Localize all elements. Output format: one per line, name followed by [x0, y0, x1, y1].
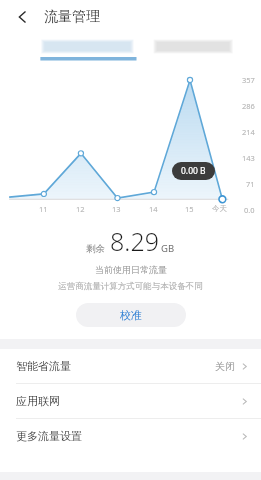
button[interactable]: 更多流量设置 — [0, 419, 261, 453]
button[interactable]: 校准 — [76, 303, 186, 327]
staticText: 关闭 — [215, 360, 235, 373]
staticText: 12 — [76, 204, 261, 214]
staticText: 今天 — [212, 204, 261, 213]
staticText: 14 — [149, 204, 261, 214]
staticText: 143 — [242, 153, 255, 163]
staticText: 应用联网 — [16, 394, 60, 408]
staticText: 15 — [185, 204, 261, 214]
staticText: 0.0 — [244, 205, 255, 215]
staticText: 剩余 — [86, 243, 105, 255]
button[interactable]: 应用联网 — [0, 384, 261, 418]
staticText: 11 — [39, 204, 261, 214]
staticText: 0.00 B — [181, 165, 206, 177]
staticText: 运营商流量计算方式可能与本设备不同 — [58, 281, 203, 292]
staticText: 流量管理 — [44, 8, 100, 26]
staticText: 357 — [242, 75, 255, 85]
staticText: 智能省流量 — [16, 359, 71, 373]
button[interactable]: 智能省流量 — [0, 349, 261, 383]
staticText: 8.29 — [110, 224, 159, 258]
staticText: 71 — [246, 179, 255, 189]
staticText: 214 — [242, 127, 255, 137]
button[interactable]: Back — [10, 4, 36, 30]
staticText: GB — [161, 242, 175, 255]
staticText: 13 — [112, 204, 261, 214]
staticText: 当前使用日常流量 — [95, 264, 167, 275]
staticText: 更多流量设置 — [16, 429, 82, 443]
staticText: 286 — [242, 101, 255, 111]
staticText: 校准 — [120, 308, 142, 322]
